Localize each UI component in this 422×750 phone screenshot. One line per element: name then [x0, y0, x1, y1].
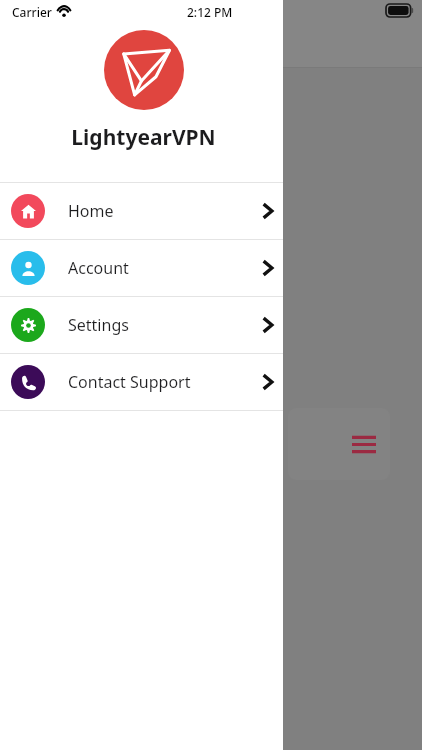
- button[interactable]: Account: [0, 240, 283, 296]
- staticText: 2:12 PM: [187, 4, 233, 20]
- staticText: Carrier: [12, 4, 52, 20]
- button[interactable]: Settings: [0, 297, 283, 353]
- staticText: LightyearVPN: [71, 123, 216, 152]
- button[interactable]: Home: [0, 183, 283, 239]
- button[interactable]: Contact Support: [0, 354, 283, 410]
- staticText: Settings: [68, 314, 129, 336]
- staticText: Contact Support: [68, 371, 191, 393]
- button[interactable]: Open navigation menu: [288, 408, 390, 480]
- staticText: Account: [68, 257, 129, 279]
- staticText: Home: [68, 200, 114, 222]
